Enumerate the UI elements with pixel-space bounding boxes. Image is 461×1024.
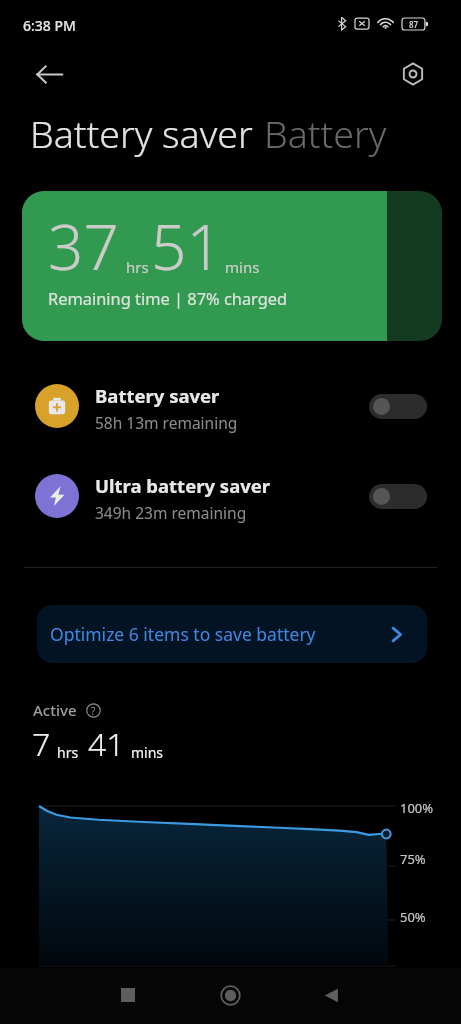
staticText: hrs (126, 257, 149, 277)
button[interactable]: Settings (391, 52, 435, 96)
staticText: Battery (264, 108, 387, 159)
staticText: Battery saver (30, 108, 253, 159)
button[interactable]: Back (308, 972, 354, 1018)
button[interactable]: Battery (264, 100, 387, 167)
staticText: mins (225, 257, 260, 277)
staticText: Optimize 6 items to save battery (50, 622, 316, 646)
staticText: 41 (88, 722, 125, 766)
button[interactable]: Home (207, 972, 253, 1018)
button[interactable]: Back (28, 53, 70, 95)
staticText: hrs (57, 743, 79, 762)
button[interactable]: Optimize 6 items to save battery (37, 605, 427, 663)
staticText: Active (33, 700, 77, 720)
staticText: 50% (400, 908, 426, 926)
staticText: 87 (409, 19, 419, 30)
staticText: 75% (400, 850, 426, 868)
staticText: 37 (48, 204, 119, 288)
staticText: ? (91, 704, 96, 718)
staticText: 7 (32, 722, 51, 766)
button[interactable]: Recents (105, 972, 151, 1018)
staticText: 100% (400, 799, 434, 817)
button[interactable]: Ultra battery saver (0, 464, 461, 528)
button[interactable]: Battery saver (0, 374, 461, 438)
button[interactable]: Toggle Ultra battery saver (369, 484, 427, 509)
button[interactable]: Battery saver (30, 100, 253, 167)
staticText: Battery saver (95, 383, 220, 408)
staticText: 6:38 PM (23, 16, 76, 35)
staticText: 58h 13m remaining (95, 412, 238, 433)
button[interactable]: 37 (22, 191, 442, 341)
staticText: 51 (151, 204, 222, 288)
staticText: mins (131, 743, 164, 762)
staticText: Ultra battery saver (95, 473, 271, 498)
staticText: Remaining time | 87% charged (48, 287, 288, 309)
staticText: 349h 23m remaining (95, 502, 247, 523)
button[interactable]: Toggle Battery saver (369, 394, 427, 419)
